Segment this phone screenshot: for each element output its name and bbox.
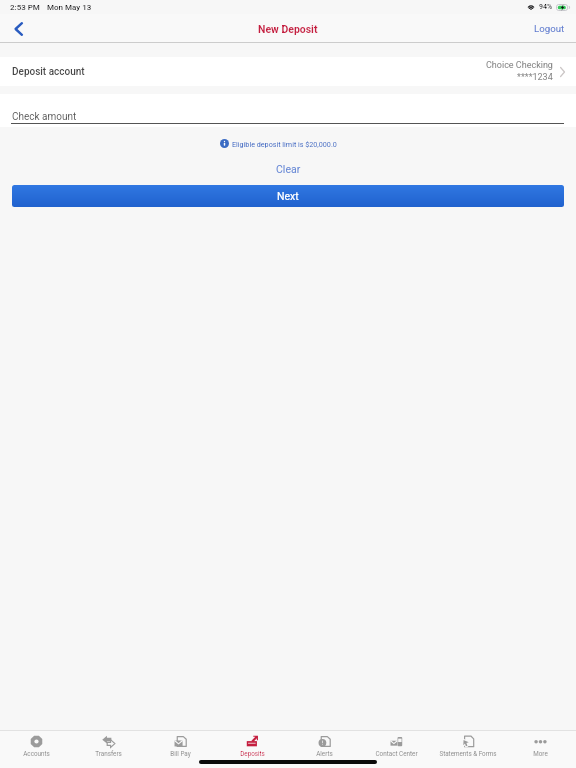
button[interactable]: Deposit account	[0, 57, 576, 86]
staticText: Alerts	[316, 750, 333, 757]
button[interactable]: Alerts	[288, 731, 360, 759]
staticText: ****1234	[517, 72, 553, 83]
button[interactable]: Deposits	[216, 731, 288, 759]
staticText: Deposit account	[12, 66, 85, 78]
staticText: Transfers	[95, 750, 122, 757]
staticText: Choice Checking	[486, 60, 553, 71]
button[interactable]: Contact Center	[360, 731, 432, 759]
staticText: Next	[277, 190, 299, 202]
staticText: 2:53 PM	[10, 3, 40, 12]
button[interactable]: More	[504, 731, 576, 759]
button[interactable]: Transfers	[72, 731, 144, 759]
staticText: Deposits	[240, 750, 265, 757]
staticText: 94%	[539, 3, 553, 11]
staticText: Mon May 13	[47, 3, 92, 12]
staticText: Logout	[534, 23, 565, 34]
button[interactable]: Next	[12, 185, 564, 207]
staticText: More	[533, 750, 548, 757]
staticText: Bill Pay	[170, 750, 191, 757]
button[interactable]: Accounts	[0, 731, 72, 759]
button[interactable]: Statements & Forms	[432, 731, 504, 759]
button[interactable]: Logout	[522, 14, 576, 43]
staticText: Eligible deposit limit is $20,000.0	[232, 140, 337, 148]
staticText: Statements & Forms	[439, 750, 497, 757]
button[interactable]: Back	[0, 14, 36, 43]
button[interactable]: Bill Pay	[144, 731, 216, 759]
staticText: Contact Center	[375, 750, 418, 757]
staticText: New Deposit	[258, 23, 318, 35]
button[interactable]: Clear	[260, 161, 317, 177]
staticText: Check amount	[12, 111, 77, 123]
staticText: Accounts	[23, 750, 50, 757]
staticText: Clear	[276, 163, 301, 175]
